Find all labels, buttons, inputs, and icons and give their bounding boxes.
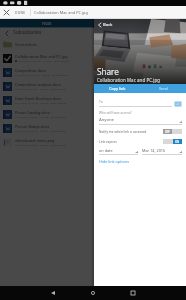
button[interactable]: whiteboard notes.png — [0, 135, 186, 149]
button[interactable]: Competitive.docx — [0, 65, 186, 79]
button[interactable]: Home — [80, 286, 106, 300]
staticText: Picture Badge.docx — [15, 124, 50, 129]
staticText: Competitive analysis.docx — [15, 82, 62, 87]
button[interactable]: Back — [94, 19, 116, 30]
button[interactable]: Back — [40, 286, 66, 300]
button[interactable]: Notify me when link is accessed — [99, 129, 182, 134]
staticText: Subsidiaries — [13, 29, 42, 36]
staticText: Mar 14, 2016 — [142, 148, 179, 153]
staticText: Collaboration Mac and PC.jpg — [97, 77, 161, 83]
staticText: Collaboration Mac and PC.jpg — [15, 54, 68, 59]
staticText: Hide link options — [99, 159, 130, 164]
button[interactable]: Choose contacts — [174, 101, 182, 107]
button[interactable]: Hide link options — [99, 159, 130, 164]
staticText: Notify me when link is accessed — [99, 130, 161, 134]
staticText: Who will have access? — [99, 111, 132, 115]
staticText: ON — [175, 140, 180, 144]
staticText: DONE — [15, 10, 26, 15]
button[interactable]: Screenshots — [0, 37, 186, 51]
staticText: Photo Catalog.docx — [15, 110, 50, 115]
staticText: 3/11/2016, 9:41 PM 209 KB Jane Thomas — [15, 87, 66, 90]
staticText: whiteboard notes.png — [15, 138, 55, 143]
button[interactable]: Collaboration Mac and PC.jpg — [0, 51, 186, 65]
staticText: on date — [99, 148, 135, 153]
staticText: 3/12/2016, 2:01 AM 414 KB Jane Thomas — [18, 59, 70, 62]
button[interactable]: Copy link — [94, 84, 140, 93]
button[interactable]: Data Sheet Brochure.docx — [0, 93, 186, 107]
button[interactable]: Subsidiaries — [0, 28, 186, 37]
staticText: 3/11/2016, 3:56 PM 372 KB Jane Thomas — [15, 129, 66, 132]
staticText: Collaboration Mac and PC.jpg — [34, 10, 88, 15]
staticText: Link expires — [99, 140, 161, 144]
button[interactable]: Link expires — [99, 139, 182, 144]
button[interactable]: OFFLINE — [93, 19, 186, 28]
staticText: 3/11/2016, 3:55 PM 317 KB Jane Thomas — [15, 115, 66, 118]
staticText: 3/11/2016, 6:12 AM 239 KB Jane Thomas — [15, 101, 67, 104]
staticText: Copy link — [109, 86, 126, 91]
button[interactable]: Picture Badge.docx — [0, 121, 186, 135]
button[interactable]: DONE — [14, 6, 27, 19]
staticText: FILES — [42, 22, 52, 26]
button[interactable]: Anyone — [99, 117, 182, 125]
staticText: OFF — [165, 130, 170, 134]
button[interactable]: Recents — [120, 286, 146, 300]
staticText: 3/12/2016, 10:46 AM 248 KB Jane Thomas — [15, 73, 68, 76]
button[interactable]: Competitive analysis.docx — [0, 79, 186, 93]
button[interactable]: Photo Catalog.docx — [0, 107, 186, 121]
staticText: Anyone — [99, 117, 179, 123]
staticText: Competitive.docx — [15, 68, 46, 73]
button[interactable]: Close — [0, 6, 13, 19]
staticText: Back — [103, 22, 113, 28]
staticText: Data Sheet Brochure.docx — [15, 96, 62, 101]
staticText: To — [99, 99, 103, 104]
staticText: Share — [97, 66, 119, 77]
staticText: 3/11/2016, 9:05 PM 198 KB Jane Thomas — [15, 143, 66, 146]
button[interactable]: Mar 14, 2016 — [142, 148, 182, 155]
button[interactable]: on date — [99, 148, 138, 155]
staticText: Send — [159, 86, 168, 91]
staticText: Screenshots — [15, 42, 37, 47]
button[interactable]: To — [99, 99, 172, 107]
button[interactable]: FILES — [0, 19, 93, 28]
button[interactable]: Send — [140, 84, 186, 93]
